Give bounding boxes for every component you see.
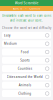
staticText: Animals bbox=[19, 83, 31, 87]
button[interactable]: Clothing bbox=[2, 90, 51, 97]
staticText: Countries bbox=[18, 67, 32, 71]
button[interactable]: Food bbox=[2, 48, 51, 55]
staticText: Word Scramble bbox=[14, 1, 38, 5]
staticText: and increase your score. bbox=[10, 19, 43, 22]
button[interactable]: Countries bbox=[2, 65, 51, 72]
button[interactable]: Cities around the World bbox=[2, 73, 51, 80]
button[interactable]: Medium bbox=[2, 40, 51, 47]
staticText: Unscramble each word to earn coins bbox=[2, 14, 51, 18]
button[interactable]: Sports bbox=[2, 57, 51, 64]
staticText: Medium bbox=[4, 42, 17, 46]
staticText: Easy bbox=[4, 33, 10, 37]
button[interactable]: Easy bbox=[2, 32, 51, 39]
staticText: Cities around the World bbox=[7, 75, 43, 79]
staticText: Clothing bbox=[18, 91, 31, 95]
button[interactable]: Animals bbox=[2, 82, 51, 89]
staticText: Food bbox=[21, 50, 29, 54]
staticText: Sports bbox=[20, 58, 29, 62]
staticText: Choose the word set and difficulty bbox=[2, 26, 51, 30]
staticText: Score 0 • Coins 0 bbox=[12, 7, 40, 10]
